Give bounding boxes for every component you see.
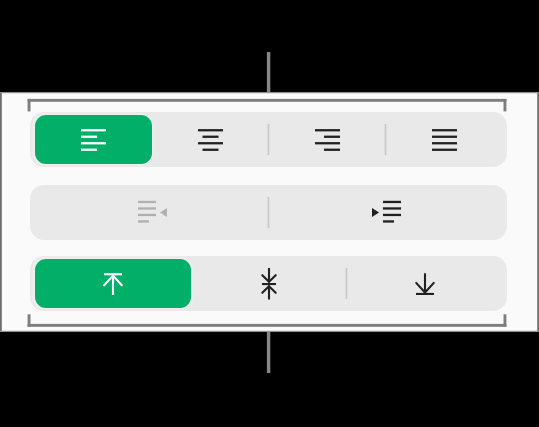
button[interactable]: Decrease indent xyxy=(35,185,269,240)
button[interactable]: Align left xyxy=(35,112,152,167)
button[interactable]: Justify xyxy=(386,112,503,167)
button[interactable]: Align right xyxy=(269,112,386,167)
button[interactable]: Align bottom xyxy=(347,256,503,311)
button[interactable]: Align top xyxy=(35,256,191,311)
button[interactable]: Align middle xyxy=(191,256,347,311)
button[interactable]: Align center xyxy=(152,112,269,167)
button[interactable]: Increase indent xyxy=(269,185,503,240)
